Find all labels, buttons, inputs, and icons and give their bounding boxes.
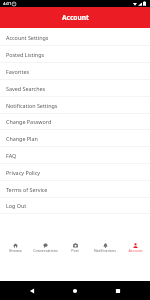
button[interactable]: FAQ [0, 147, 150, 164]
staticText: Browse [9, 248, 22, 253]
staticText: Account Settings [6, 34, 49, 41]
button[interactable]: Change Password [0, 113, 150, 130]
staticText: 4:01 [3, 1, 12, 7]
staticText: Post [71, 248, 79, 253]
staticText: Change Plan [6, 135, 38, 142]
button[interactable]: Browse [0, 238, 30, 253]
staticText: Terms of Service [6, 186, 48, 193]
button[interactable]: Change Plan [0, 130, 150, 147]
button[interactable]: Log Out [0, 197, 150, 214]
staticText: Notifications [94, 248, 116, 253]
staticText: Posted Listings [6, 51, 45, 58]
staticText: Account [128, 248, 143, 253]
button[interactable]: Back [27, 286, 37, 296]
button[interactable]: Notifications [90, 238, 120, 253]
staticText: Notification Settings [6, 102, 58, 109]
button[interactable]: Account [120, 238, 150, 253]
staticText: Favorites [6, 68, 30, 75]
staticText: Change Password [6, 118, 52, 125]
button[interactable]: Account Settings [0, 29, 150, 46]
staticText: Conversations [33, 248, 58, 253]
button[interactable]: Conversations [30, 238, 60, 253]
button[interactable]: Saved Searches [0, 80, 150, 97]
button[interactable]: Home [70, 286, 80, 296]
button[interactable]: Post [60, 238, 90, 253]
staticText: Privacy Policy [6, 169, 41, 176]
button[interactable]: Favorites [0, 63, 150, 80]
button[interactable]: Terms of Service [0, 181, 150, 198]
button[interactable]: Privacy Policy [0, 164, 150, 181]
button[interactable]: Posted Listings [0, 46, 150, 63]
staticText: Saved Searches [6, 85, 46, 92]
other: System navigation [0, 281, 150, 300]
staticText: FAQ [6, 152, 17, 159]
staticText: Log Out [6, 202, 27, 209]
staticText: Account [62, 13, 89, 22]
button[interactable]: Recents [113, 286, 123, 296]
button[interactable]: Notification Settings [0, 97, 150, 114]
